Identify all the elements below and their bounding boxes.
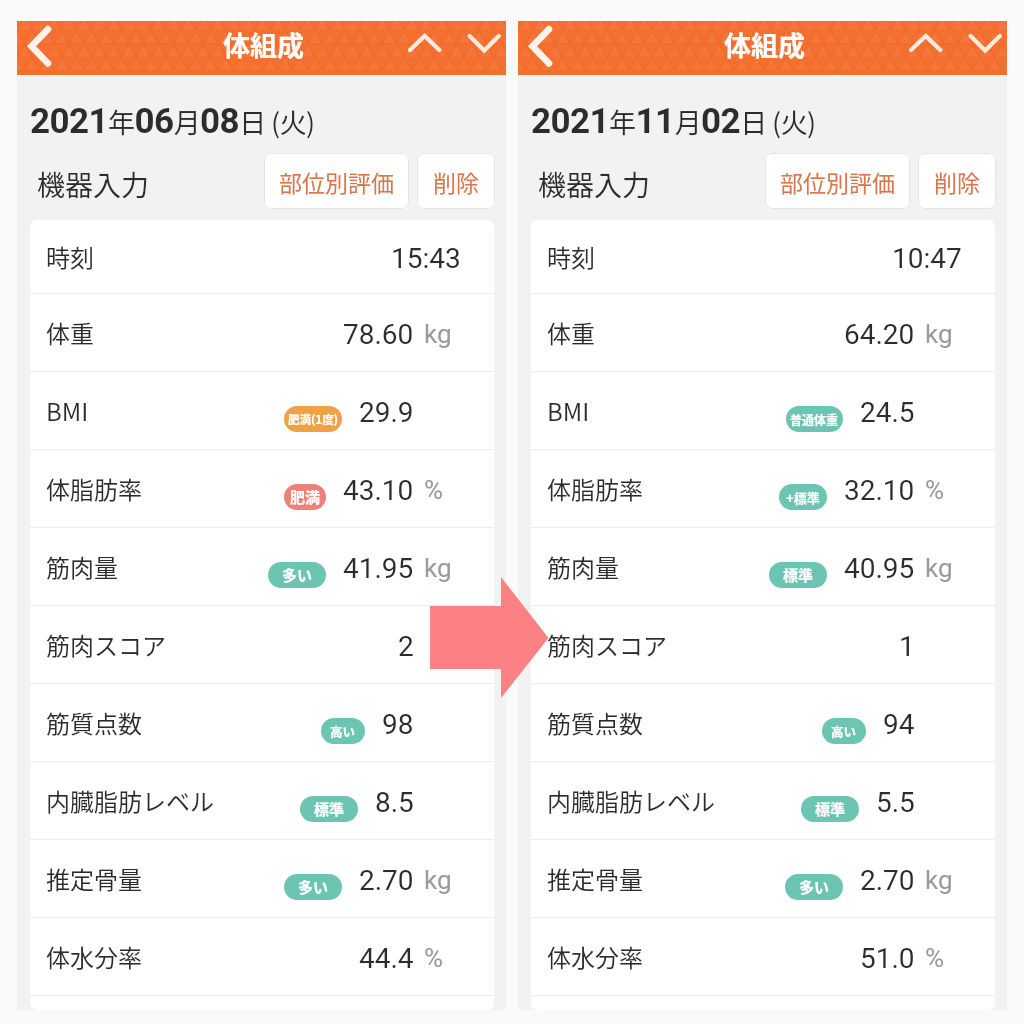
staticText: kg [424, 553, 452, 583]
staticText: 51.0 [860, 942, 915, 975]
staticText: 時刻 [46, 239, 94, 274]
button[interactable]: 体水分率 [30, 918, 494, 995]
staticText: 標準 [314, 798, 345, 820]
staticText: 2.70 [359, 864, 414, 897]
button[interactable]: 推定骨量 [531, 840, 995, 917]
staticText: 10:47 [892, 242, 962, 275]
button[interactable]: BMI [531, 372, 995, 449]
staticText: 高い [831, 722, 857, 740]
staticText: 筋肉スコア [547, 627, 667, 662]
button[interactable]: Previous record [898, 21, 950, 75]
staticText: 64.20 [844, 318, 915, 351]
button[interactable]: BMI [30, 372, 494, 449]
button[interactable]: 体脂肪率 [30, 450, 494, 527]
staticText: 体水分率 [547, 939, 643, 974]
staticText: 40.95 [844, 552, 915, 585]
staticText: 肥満(1度) [288, 411, 338, 428]
staticText: 推定骨量 [547, 861, 643, 896]
staticText: 時刻 [547, 239, 595, 274]
staticText: 普通体重 [790, 411, 839, 428]
staticText: 部位別評価 [279, 165, 394, 198]
staticText: 筋肉量 [46, 549, 118, 584]
button[interactable]: Previous record [397, 21, 449, 75]
staticText: 高い [330, 722, 356, 740]
staticText: BMI [46, 393, 89, 428]
button[interactable]: Back [518, 21, 573, 75]
button[interactable]: 部位別評価 [765, 153, 910, 209]
button[interactable]: 体脂肪率 [531, 450, 995, 527]
button[interactable]: 削除 [918, 153, 996, 209]
staticText: 多い [298, 876, 329, 898]
staticText: kg [424, 865, 452, 895]
staticText: 標準 [815, 798, 846, 820]
staticText: 体組成 [724, 25, 805, 64]
staticText: 削除 [934, 165, 980, 198]
staticText: 29.9 [359, 396, 414, 429]
staticText: kg [424, 319, 452, 349]
staticText: 筋肉量 [547, 549, 619, 584]
staticText: 体脂肪率 [547, 471, 643, 506]
staticText: 5.5 [876, 786, 915, 819]
staticText: 削除 [433, 165, 479, 198]
staticText: kg [925, 319, 953, 349]
staticText: 推定骨量 [46, 861, 142, 896]
staticText: 多い [799, 876, 830, 898]
button[interactable]: 筋肉量 [30, 528, 494, 605]
button[interactable]: 内臓脂肪レベル [531, 762, 995, 839]
staticText: 筋肉スコア [46, 627, 166, 662]
button[interactable]: 削除 [417, 153, 495, 209]
staticText: 筋質点数 [46, 705, 142, 740]
staticText: 標準 [783, 564, 814, 586]
button[interactable]: 時刻 [30, 220, 494, 293]
button[interactable]: Next record [457, 21, 506, 75]
button[interactable]: 筋肉量 [531, 528, 995, 605]
staticText: 94 [883, 708, 915, 741]
button[interactable]: Next record [958, 21, 1007, 75]
staticText: 機器入力 [37, 164, 150, 205]
staticText: 8.5 [375, 786, 414, 819]
staticText: 機器入力 [538, 164, 651, 205]
staticText: 78.60 [343, 318, 414, 351]
staticText: 2021年06月08日 (火) [30, 101, 315, 142]
staticText: 体重 [46, 315, 94, 350]
staticText: 1 [899, 630, 915, 663]
staticText: kg [925, 865, 953, 895]
button[interactable]: 筋質点数 [30, 684, 494, 761]
staticText: 2.70 [860, 864, 915, 897]
staticText: 15:43 [391, 242, 461, 275]
button[interactable]: 筋肉スコア [531, 606, 995, 683]
staticText: % [925, 943, 945, 973]
staticText: 32.10 [844, 474, 915, 507]
staticText: 部位別評価 [780, 165, 895, 198]
staticText: % [424, 943, 444, 973]
staticText: 2021年11月02日 (火) [531, 101, 816, 142]
staticText: % [925, 475, 945, 505]
button[interactable]: 部位別評価 [264, 153, 409, 209]
staticText: 肥満 [290, 486, 321, 508]
button[interactable]: 体重 [531, 294, 995, 371]
button[interactable]: 体重 [30, 294, 494, 371]
staticText: 24.5 [860, 396, 915, 429]
button[interactable]: Back [17, 21, 72, 75]
staticText: % [424, 475, 444, 505]
button[interactable]: 内臓脂肪レベル [30, 762, 494, 839]
staticText: 内臓脂肪レベル [547, 783, 715, 818]
staticText: 体脂肪率 [46, 471, 142, 506]
button[interactable]: 時刻 [531, 220, 995, 293]
staticText: 41.95 [343, 552, 414, 585]
staticText: 体組成 [223, 25, 304, 64]
staticText: 43.10 [343, 474, 414, 507]
staticText: kg [925, 553, 953, 583]
staticText: 98 [382, 708, 414, 741]
button[interactable]: 筋質点数 [531, 684, 995, 761]
staticText: 体重 [547, 315, 595, 350]
button[interactable]: 体水分率 [531, 918, 995, 995]
staticText: 内臓脂肪レベル [46, 783, 214, 818]
staticText: 44.4 [359, 942, 414, 975]
button[interactable]: 筋肉スコア [30, 606, 494, 683]
staticText: 2 [398, 630, 414, 663]
staticText: BMI [547, 393, 590, 428]
button[interactable]: 推定骨量 [30, 840, 494, 917]
